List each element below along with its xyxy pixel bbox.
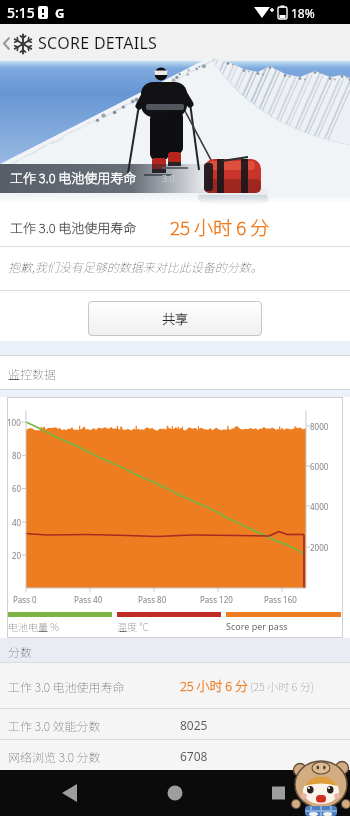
staticText: 8000 — [310, 421, 329, 432]
staticText: 监控数据 — [8, 365, 57, 382]
staticText: 100 — [7, 417, 21, 428]
staticText: 3.0 — [162, 172, 175, 184]
staticText: 2000 — [310, 542, 329, 553]
staticText: 80 — [12, 450, 22, 461]
staticText: 60 — [12, 483, 22, 494]
staticText: 6708 — [180, 748, 208, 764]
staticText: SCORE DETAILS — [38, 32, 158, 54]
staticText: Pass 40 — [74, 594, 103, 605]
button[interactable] — [52, 783, 86, 803]
staticText: Pass 80 — [138, 594, 167, 605]
staticText: 温度 °C — [117, 619, 149, 633]
button[interactable]: 工作 3.0 电池使用寿命 — [0, 663, 350, 708]
staticText: 25 小时 6 分 — [180, 676, 248, 695]
staticText: 共享 — [162, 309, 189, 328]
staticText: 40 — [12, 517, 22, 528]
staticText: 6000 — [310, 461, 329, 472]
staticText: (25 小时 6 分) — [250, 678, 315, 694]
button[interactable]: 工作 3.0 电池使用寿命 — [0, 61, 350, 205]
staticText: Pass 0 — [13, 594, 37, 605]
button[interactable]: 网络浏览 3.0 分数 — [0, 740, 350, 770]
staticText: 5:15 — [7, 3, 35, 22]
staticText: 工作 3.0 电池使用寿命 — [8, 678, 125, 695]
button[interactable] — [261, 783, 295, 803]
staticText: 抱歉,我们没有足够的数据来对比此设备的分数。 — [8, 258, 263, 275]
button[interactable]: 工作 3.0 效能分数 — [0, 709, 350, 739]
staticText: 25 小时 6 分 — [170, 213, 270, 241]
staticText: 4000 — [310, 501, 329, 512]
staticText: Score per pass — [226, 620, 288, 632]
staticText: Pass 120 — [200, 594, 233, 605]
button[interactable] — [158, 783, 192, 803]
staticText: 电池电量 % — [8, 619, 59, 633]
staticText: 网络浏览 3.0 分数 — [8, 748, 101, 765]
staticText: 工作 3.0 效能分数 — [8, 717, 101, 734]
staticText: G — [55, 4, 65, 22]
staticText: Pass 160 — [264, 594, 297, 605]
staticText: 8025 — [180, 717, 208, 733]
button[interactable]: 共享 — [88, 301, 262, 336]
staticText: 工作 3.0 电池使用寿命 — [10, 168, 137, 187]
staticText: 18% — [291, 5, 315, 21]
staticText: 分数 — [8, 643, 33, 660]
staticText: 20 — [12, 550, 22, 561]
staticText: 工作 3.0 电池使用寿命 — [10, 218, 137, 237]
